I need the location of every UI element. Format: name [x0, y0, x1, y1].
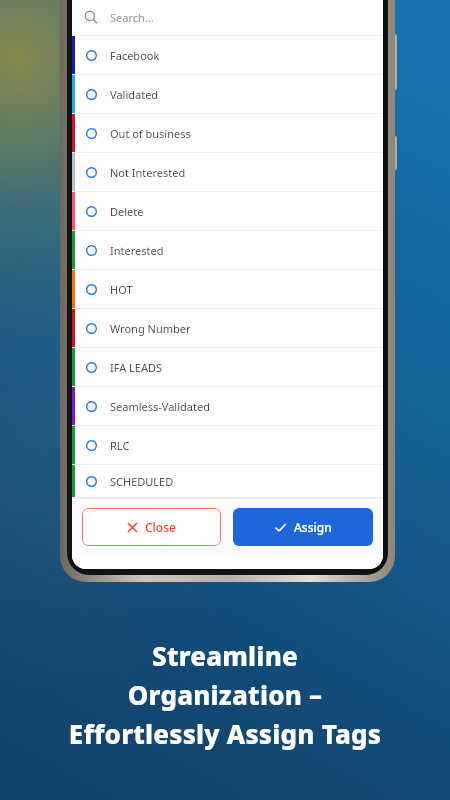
staticText: Assign	[294, 519, 332, 535]
button[interactable]: Facebook	[72, 36, 383, 75]
staticText: Not Interested	[110, 165, 186, 180]
button[interactable]: IFA LEADS	[72, 348, 383, 387]
button[interactable]: Seamless-Validated	[72, 387, 383, 426]
button[interactable]: SCHEDULED	[72, 465, 383, 498]
staticText: SCHEDULED	[110, 474, 174, 489]
button[interactable]: Not Interested	[72, 153, 383, 192]
staticText: Streamline	[14, 638, 436, 673]
button[interactable]: Out of business	[72, 114, 383, 153]
staticText: Close	[145, 519, 176, 535]
button[interactable]: Search...	[72, 0, 383, 35]
staticText: Organization –	[14, 677, 436, 712]
button[interactable]: Wrong Number	[72, 309, 383, 348]
button[interactable]: RLC	[72, 426, 383, 465]
staticText: Delete	[110, 204, 144, 219]
staticText: RLC	[110, 438, 130, 453]
staticText: Validated	[110, 87, 159, 102]
button[interactable]: Assign	[233, 508, 373, 546]
button[interactable]: Interested	[72, 231, 383, 270]
staticText: Search...	[110, 10, 154, 25]
button[interactable]: Validated	[72, 75, 383, 114]
staticText: IFA LEADS	[110, 360, 163, 375]
button[interactable]: Close	[82, 508, 221, 546]
staticText: Out of business	[110, 126, 191, 141]
staticText: Interested	[110, 243, 164, 258]
staticText: Seamless-Validated	[110, 399, 210, 414]
button[interactable]: HOT	[72, 270, 383, 309]
staticText: Effortlessly Assign Tags	[14, 716, 436, 751]
staticText: Wrong Number	[110, 321, 191, 336]
button[interactable]: Delete	[72, 192, 383, 231]
staticText: Facebook	[110, 48, 160, 63]
staticText: HOT	[110, 282, 133, 297]
